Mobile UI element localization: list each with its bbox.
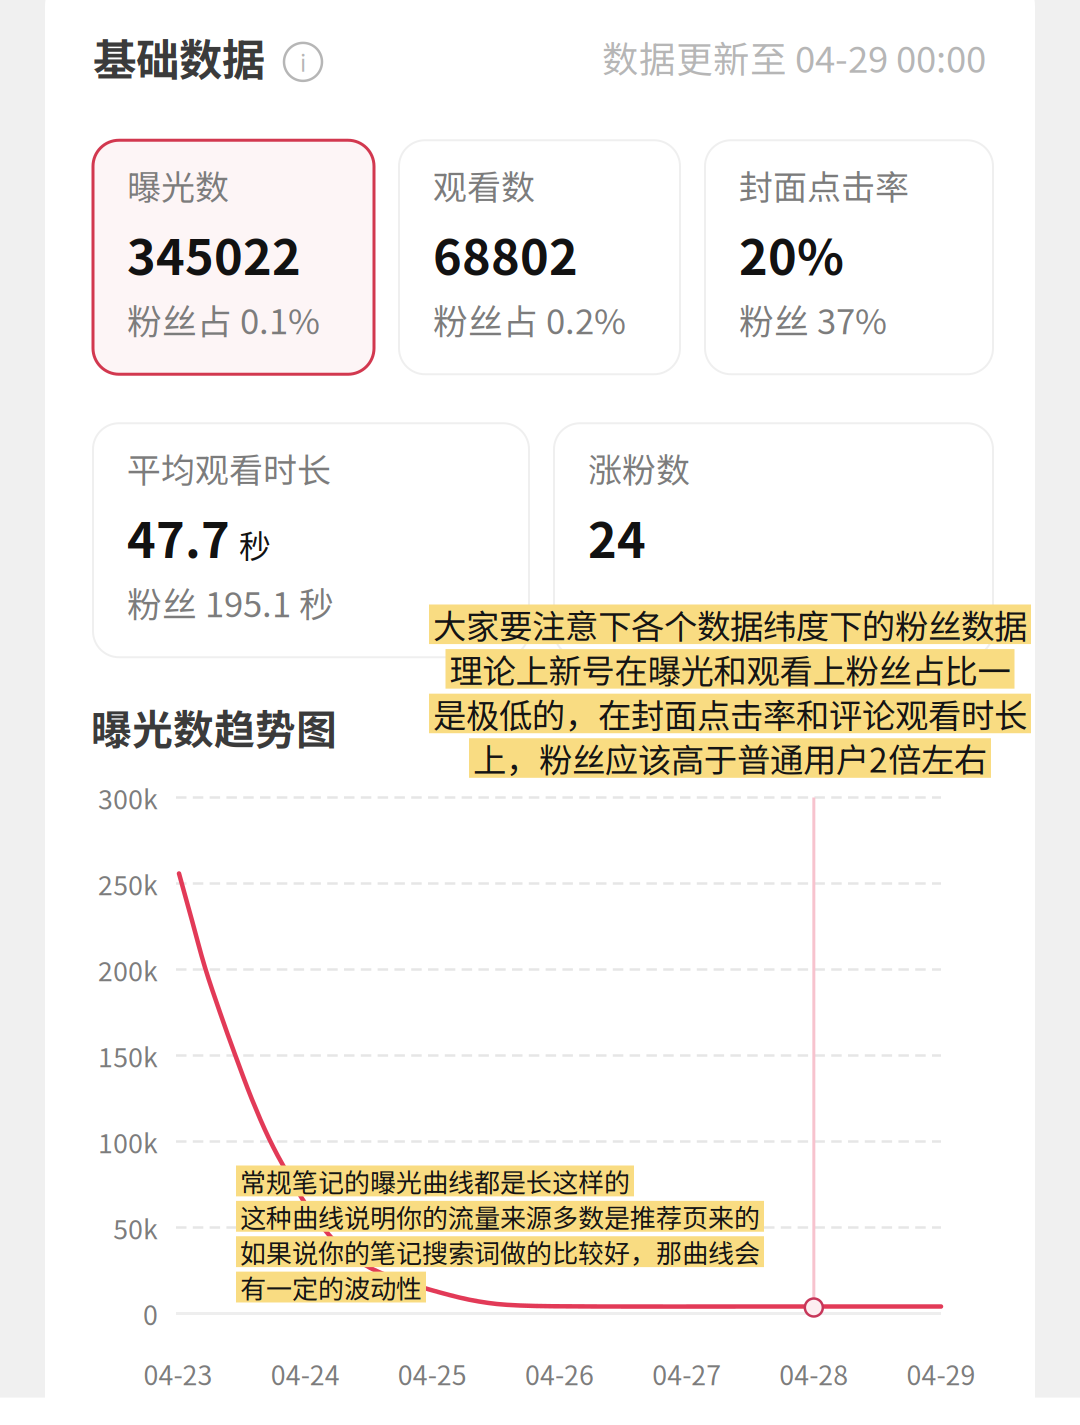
staticText: 涨粉数	[588, 443, 690, 492]
button[interactable]: 观看数	[399, 140, 680, 374]
staticText: 观看数	[433, 160, 535, 209]
staticText: 150k	[98, 1036, 158, 1075]
staticText: 04-29	[906, 1354, 975, 1393]
staticText: 50k	[113, 1208, 158, 1247]
staticText: 04-23	[143, 1354, 212, 1393]
staticText: 250k	[98, 864, 158, 903]
staticText: 粉丝 195.1 秒	[127, 577, 334, 627]
staticText: 如果说你的笔记搜索词做的比较好，那曲线会	[240, 1236, 760, 1267]
staticText: 上，粉丝应该高于普通用户2倍左右	[473, 738, 987, 778]
staticText: 24	[588, 501, 646, 572]
button[interactable]: 数据说明	[284, 38, 322, 76]
staticText: 345022	[127, 218, 301, 289]
staticText: 大家要注意下各个数据纬度下的粉丝数据	[433, 604, 1027, 644]
staticText: 04-24	[271, 1354, 340, 1393]
staticText: i	[300, 45, 306, 78]
staticText: 粉丝占 0.1%	[127, 294, 320, 344]
button[interactable]: 平均观看时长	[93, 423, 529, 657]
staticText: 理论上新号在曝光和观看上粉丝占比一	[449, 649, 1010, 689]
staticText: 这种曲线说明你的流量来源多数是推荐页来的	[240, 1201, 760, 1232]
staticText: 有一定的波动性	[240, 1272, 422, 1302]
staticText: 0	[143, 1294, 158, 1333]
staticText: 粉丝占 0.2%	[433, 294, 626, 344]
staticText: 曝光数趋势图	[91, 697, 337, 756]
staticText: 100k	[98, 1122, 158, 1161]
staticText: 200k	[98, 950, 158, 989]
staticText: 基础数据	[93, 25, 265, 88]
staticText: 平均观看时长	[127, 443, 331, 492]
staticText: 300k	[98, 778, 158, 817]
staticText: 秒	[239, 521, 271, 567]
staticText: 04-25	[398, 1354, 467, 1393]
staticText: 曝光数	[127, 160, 229, 209]
button[interactable]: 封面点击率	[705, 140, 993, 374]
staticText: 数据更新至 04-29 00:00	[602, 30, 986, 83]
staticText: 04-28	[779, 1354, 848, 1393]
staticText: 20%	[739, 218, 844, 289]
staticText: 封面点击率	[739, 160, 909, 209]
button[interactable]: 涨粉数	[554, 423, 993, 657]
staticText: 04-26	[525, 1354, 594, 1393]
staticText: 粉丝 37%	[739, 294, 887, 344]
staticText: 68802	[433, 218, 578, 289]
staticText: 04-27	[652, 1354, 721, 1393]
staticText: 是极低的，在封面点击率和评论观看时长	[433, 694, 1027, 733]
staticText: 47.7	[127, 501, 230, 572]
staticText: 常规笔记的曝光曲线都是长这样的	[240, 1165, 630, 1196]
button[interactable]: 曝光数	[93, 140, 374, 374]
